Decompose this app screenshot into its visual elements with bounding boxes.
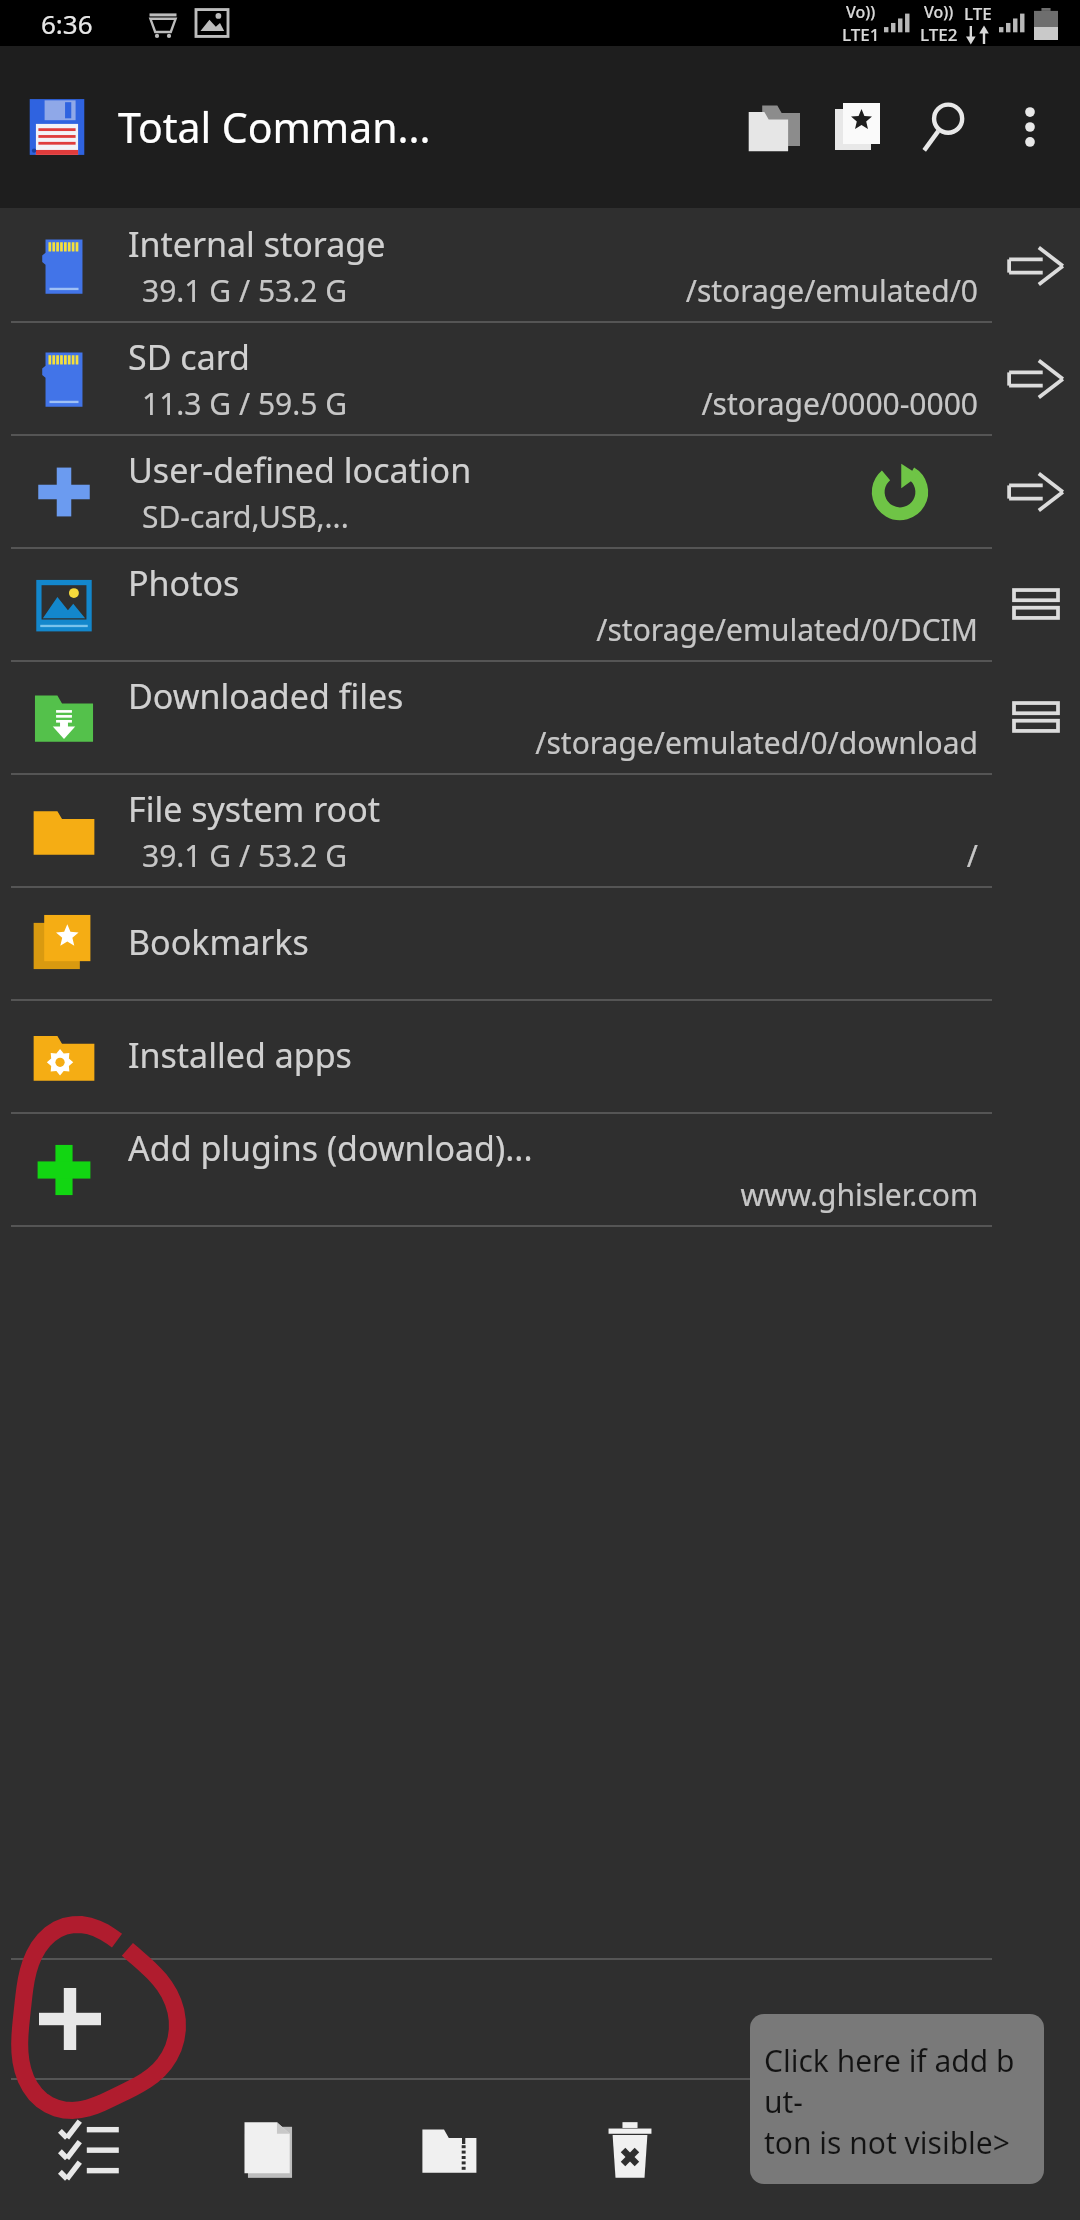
staticText: File system root	[128, 786, 380, 832]
button[interactable]: Zip	[360, 2080, 540, 2220]
staticText: Downloaded files	[128, 673, 404, 719]
button[interactable]: Select	[0, 2080, 180, 2220]
staticText: /storage/emulated/0/DCIM	[596, 609, 978, 650]
button[interactable]: Refresh	[860, 452, 940, 532]
button[interactable]: Bookmarks	[816, 84, 902, 170]
button[interactable]: Bookmarks	[0, 888, 1080, 999]
button[interactable]: Add plugins (download)...	[0, 1114, 1080, 1225]
button[interactable]: Open in other panel	[992, 448, 1080, 536]
staticText: Bookmarks	[128, 919, 309, 965]
button[interactable]: Split view	[992, 561, 1080, 649]
staticText: LTE	[964, 2, 992, 25]
staticText: Installed apps	[128, 1032, 352, 1078]
staticText: /storage/emulated/0/download	[535, 722, 978, 763]
button[interactable]: SD card	[0, 323, 1080, 434]
staticText: /	[966, 835, 978, 876]
staticText: User-defined location	[128, 447, 472, 493]
button[interactable]: Delete	[540, 2080, 720, 2220]
staticText: Click here if add b	[764, 2040, 1015, 2081]
button[interactable]: Click here if add b	[750, 2014, 1044, 2184]
button[interactable]: New file	[180, 2080, 360, 2220]
staticText: Vo))	[924, 1, 954, 23]
button[interactable]: Split view	[992, 674, 1080, 762]
button[interactable]: Internal storage	[0, 210, 1080, 321]
button[interactable]: User-defined location	[0, 436, 1080, 547]
button[interactable]: Installed apps	[0, 1001, 1080, 1112]
button[interactable]: Photos	[0, 549, 1080, 660]
button[interactable]: Sort	[720, 2080, 900, 2220]
staticText: 39.1 G / 53.2 G	[142, 835, 348, 876]
staticText: Total Comman...	[118, 99, 431, 155]
staticText: ut-	[764, 2081, 804, 2122]
button[interactable]: Add	[22, 1971, 118, 2067]
staticText: Vo))	[846, 1, 876, 23]
staticText: Add plugins (download)...	[128, 1125, 533, 1171]
staticText: 6:36	[41, 6, 93, 41]
staticText: LTE1	[842, 23, 880, 46]
button[interactable]: Downloaded files	[0, 662, 1080, 773]
staticText: 11.3 G / 59.5 G	[142, 383, 348, 424]
button[interactable]: File system root	[0, 775, 1080, 886]
staticText: /storage/emulated/0	[685, 270, 978, 311]
staticText: 39.1 G / 53.2 G	[142, 270, 348, 311]
button[interactable]: Open in other panel	[992, 335, 1080, 423]
staticText: Photos	[128, 560, 240, 606]
button[interactable]: Exchange	[900, 2080, 1080, 2220]
button[interactable]: Open in other panel	[992, 222, 1080, 310]
staticText: LTE2	[920, 23, 958, 46]
staticText: SD-card,USB,...	[142, 496, 349, 537]
button[interactable]: More options	[988, 85, 1072, 169]
staticText: SD card	[128, 334, 250, 380]
staticText: Internal storage	[128, 221, 386, 267]
staticText: www.ghisler.com	[740, 1174, 978, 1215]
button[interactable]: Folders	[730, 84, 816, 170]
button[interactable]: Search	[902, 84, 988, 170]
staticText: ton is not visible>	[764, 2122, 1010, 2163]
staticText: /storage/0000-0000	[701, 383, 978, 424]
